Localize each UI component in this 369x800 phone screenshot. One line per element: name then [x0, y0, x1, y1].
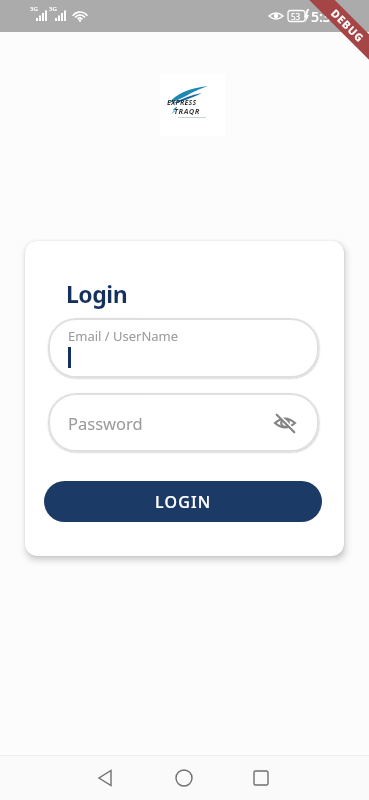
staticText: TRAQR — [174, 106, 200, 116]
staticText: Password — [68, 412, 143, 434]
button[interactable]: Email / UserName — [48, 318, 319, 378]
button[interactable]: Password — [48, 393, 319, 452]
staticText: 3G — [49, 5, 57, 13]
staticText: 5:30 — [311, 7, 339, 26]
staticText: 53 — [291, 11, 301, 22]
staticText: DEBUG — [328, 6, 368, 46]
button[interactable] — [272, 410, 297, 435]
button[interactable] — [249, 766, 273, 790]
button[interactable] — [94, 766, 118, 790]
staticText: Login — [66, 278, 128, 309]
staticText: Email / UserName — [68, 327, 179, 345]
staticText: EXPRESS — [167, 98, 197, 108]
staticText: 3G — [30, 5, 38, 13]
staticText: LOGIN — [155, 491, 212, 513]
button[interactable]: LOGIN — [44, 481, 322, 522]
button[interactable] — [172, 766, 196, 790]
